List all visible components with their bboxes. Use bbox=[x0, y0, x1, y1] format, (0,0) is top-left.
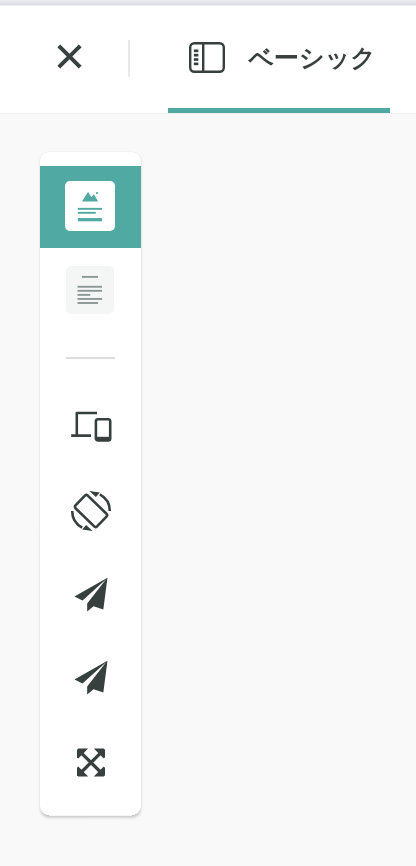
button[interactable]: Cover layout bbox=[40, 166, 141, 248]
button[interactable]: Rotate screen bbox=[40, 469, 141, 552]
button[interactable]: Send draft bbox=[40, 635, 141, 718]
button[interactable]: Send bbox=[40, 552, 141, 635]
button[interactable]: Fullscreen bbox=[40, 718, 141, 801]
button[interactable]: Devices bbox=[40, 386, 141, 469]
button[interactable]: ベーシック bbox=[168, 0, 390, 113]
staticText: ベーシック bbox=[248, 43, 376, 74]
button[interactable]: Close bbox=[0, 0, 140, 113]
button[interactable]: Text layout bbox=[40, 248, 141, 330]
